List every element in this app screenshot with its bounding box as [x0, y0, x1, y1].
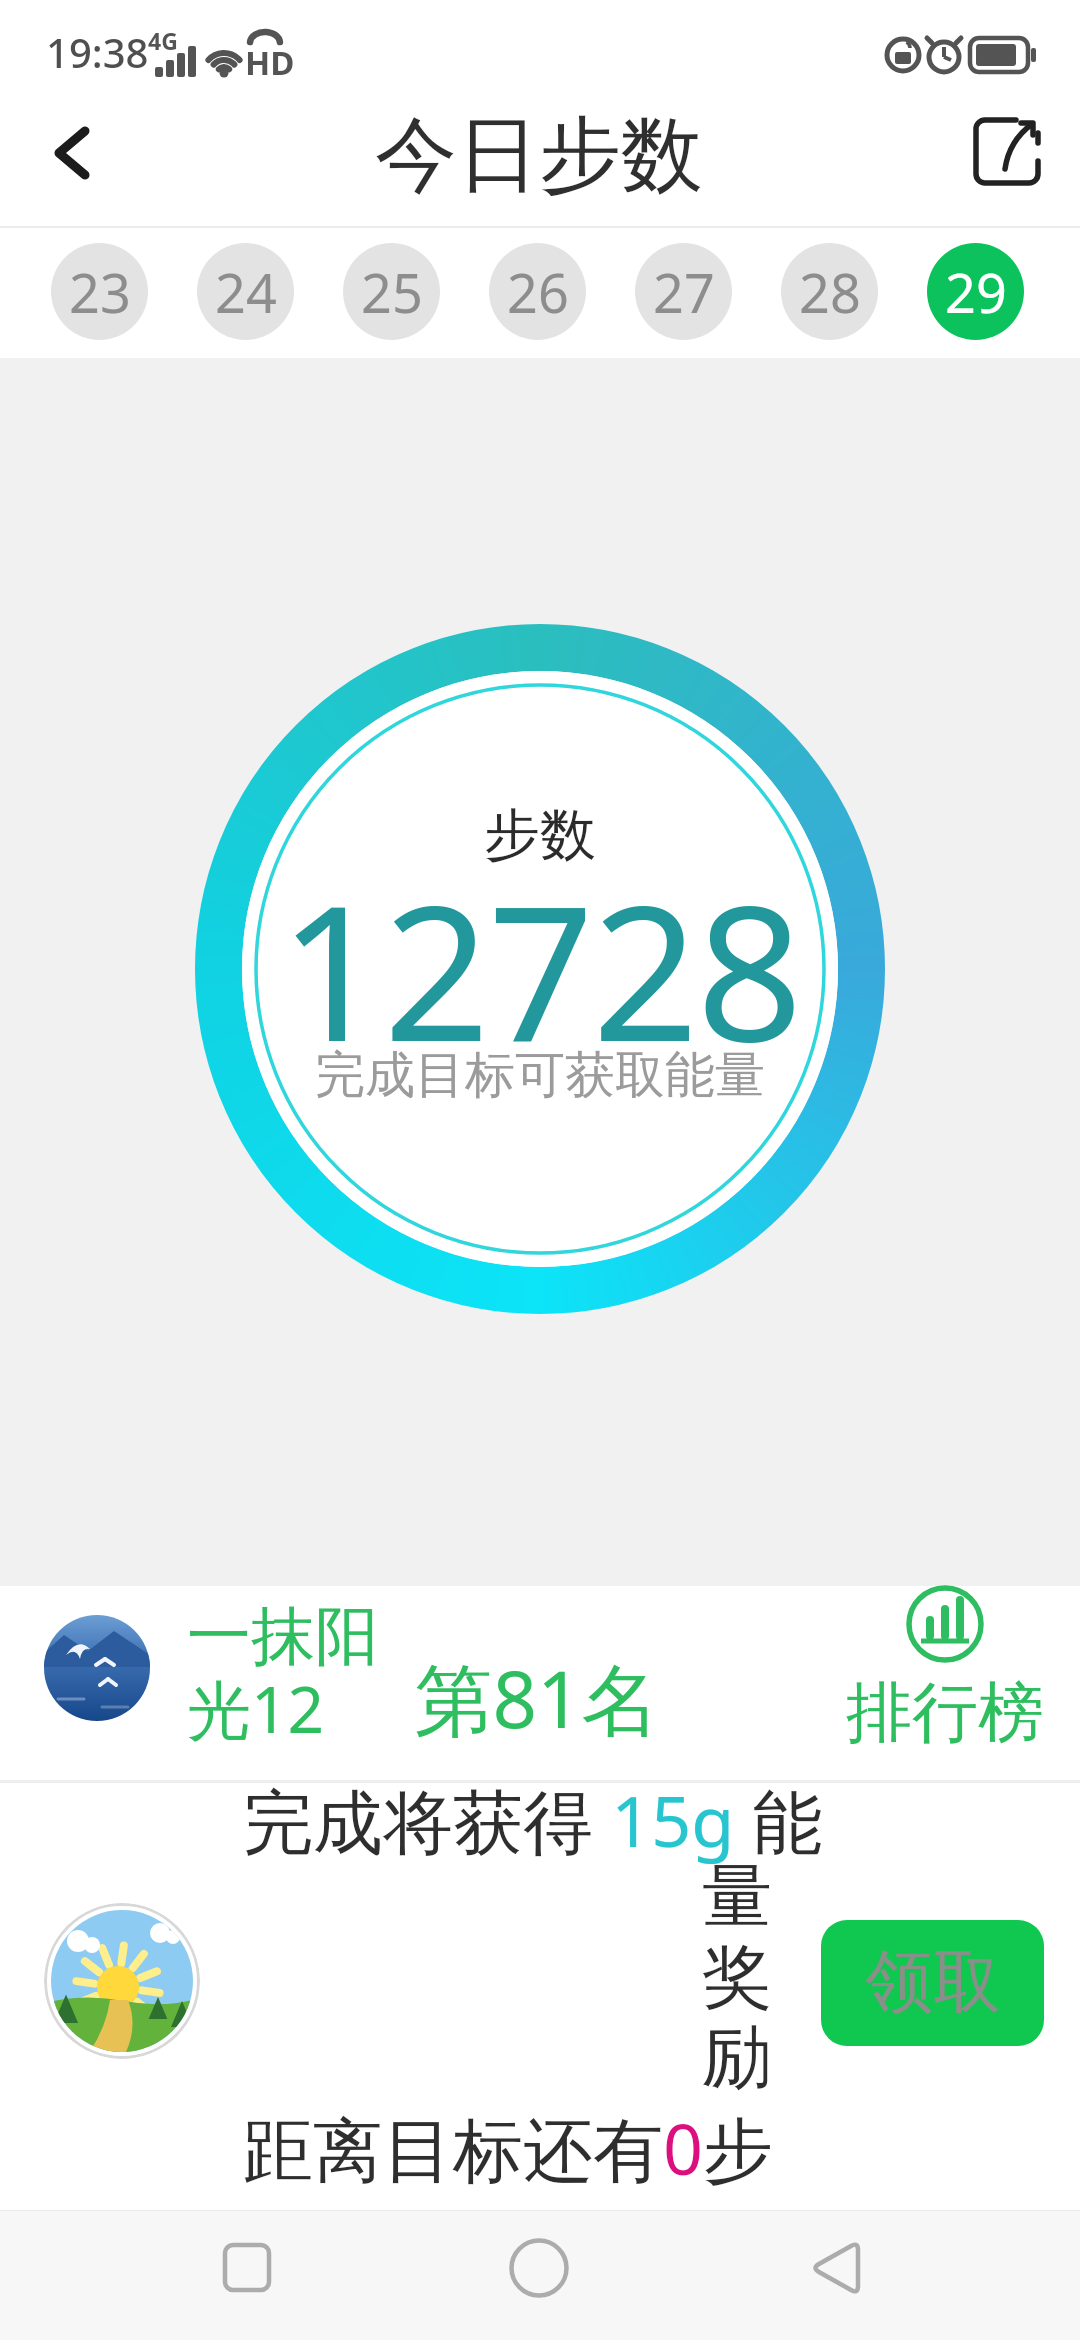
button[interactable]	[785, 2238, 885, 2298]
staticText: 完成将获得 15g 能	[243, 1772, 823, 1868]
staticText: 28	[799, 255, 861, 329]
button[interactable]: 23	[51, 243, 148, 340]
staticText: 距离目标还有0步	[243, 2100, 774, 2196]
staticText: 27	[653, 255, 715, 329]
button[interactable]: 29	[927, 243, 1024, 340]
staticText: 24	[215, 255, 277, 329]
staticText: HD	[245, 40, 295, 85]
button[interactable]: 28	[781, 243, 878, 340]
staticText: 19:38	[46, 25, 149, 79]
staticText: 一抹阳 光12	[187, 1596, 379, 1752]
staticText: 29	[945, 255, 1007, 329]
staticText: 排行榜	[846, 1671, 1044, 1754]
button[interactable]: 25	[343, 243, 440, 340]
staticText: 步数	[484, 800, 596, 871]
staticText: 26	[507, 255, 569, 329]
button[interactable]	[855, 1580, 1040, 1760]
button[interactable]	[489, 2238, 589, 2298]
button[interactable]: 26	[489, 243, 586, 340]
staticText: 完成目标可获取能量	[315, 1044, 765, 1107]
button[interactable]	[0, 1586, 1080, 1780]
staticText: 23	[69, 255, 131, 329]
staticText: 12728	[279, 842, 801, 1095]
staticText: 奖	[702, 1934, 772, 2022]
staticText: 4G	[148, 25, 178, 56]
staticText: 今日步数	[375, 104, 703, 207]
staticText: 量	[702, 1853, 772, 1941]
button[interactable]	[960, 105, 1055, 200]
staticText: 励	[702, 2014, 772, 2102]
button[interactable]: 24	[197, 243, 294, 340]
button[interactable]	[196, 2238, 296, 2298]
button[interactable]	[25, 105, 125, 205]
staticText: 第81名	[414, 1645, 660, 1752]
staticText: 25	[361, 255, 423, 329]
staticText: 领取	[865, 1940, 1001, 2026]
button[interactable]: 领取	[821, 1920, 1044, 2046]
button[interactable]: 27	[635, 243, 732, 340]
